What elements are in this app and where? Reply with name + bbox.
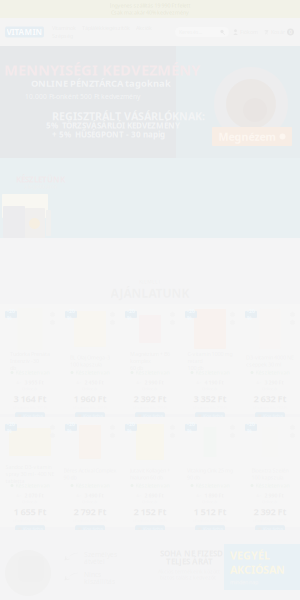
staticText: MENNYISÉGI KEDVEZMÉNY [4,60,200,79]
staticText: Kosárba [143,413,163,420]
staticText: Kosárba [143,526,163,533]
staticText: 0 [289,28,292,35]
staticText: 1 960 Ft [73,392,106,405]
button[interactable]: VEGYÉL [224,544,300,590]
staticText: 2 632 Ft [253,392,286,405]
staticText: -20% [7,307,15,321]
staticText: 1 512 Ft [193,505,226,518]
staticText: REGISZTRÁLT VÁSÁRLÓKNAK: [52,109,205,123]
staticText: -20% [7,420,15,434]
staticText: -20% [67,420,75,434]
staticText: 2 392 Ft [253,505,286,518]
button[interactable]: -20% [0,420,60,530]
button[interactable]: Kosár [264,25,294,39]
staticText: 3 164 Ft [13,392,46,405]
staticText: Kosárba [83,413,103,420]
staticText: 3 352 Ft [193,392,226,405]
button[interactable]: -20% [120,420,180,530]
button[interactable]: Megnézem [212,127,292,146]
button[interactable]: VITAMIN [5,26,44,37]
staticText: VITAMIN [6,27,42,37]
staticText: + 5% HŰSÉGPONT - 30 napig [52,129,165,140]
staticText: 10.000 Ft-onként 500 Ft kedvezmény [25,92,140,101]
staticText: VEGYÉL [230,548,270,562]
staticText: ONLINE PÉNZTÁRCA tagoknak [31,77,171,89]
staticText: -20% [247,307,255,321]
staticText: AKCIÓSAN [230,562,285,577]
staticText: 1 655 Ft [13,505,46,518]
staticText: Megnézem [218,129,275,144]
staticText: -20% [127,420,135,434]
staticText: -20% [187,307,195,321]
staticText: 2 792 Ft [73,505,106,518]
staticText: TELJES ÁRÁT [166,556,213,567]
